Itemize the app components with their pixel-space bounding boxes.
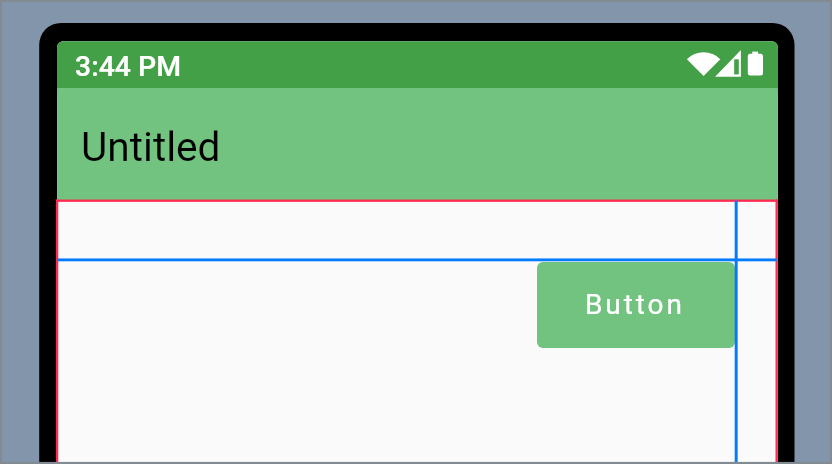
staticText: Button [585, 288, 685, 321]
other: Wifi, cellular signal and battery status [682, 41, 774, 88]
staticText: Untitled [81, 123, 221, 171]
staticText: 3:44 PM [75, 50, 182, 83]
button[interactable]: Button [537, 262, 735, 348]
